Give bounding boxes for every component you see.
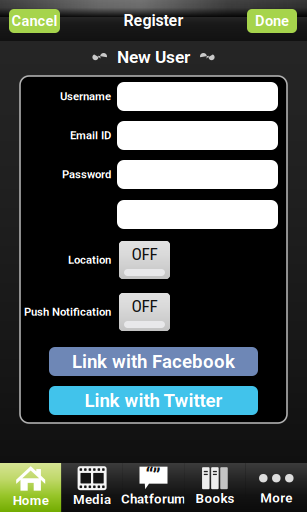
staticText: New User <box>117 47 190 67</box>
button[interactable]: Link with Twitter <box>49 386 258 415</box>
button[interactable]: Off <box>119 293 170 331</box>
button[interactable]: More <box>246 463 307 512</box>
button[interactable]: Home <box>0 463 61 512</box>
button[interactable]: Text field <box>117 121 278 150</box>
staticText: Chatforum <box>121 491 186 507</box>
staticText: More <box>260 490 292 506</box>
staticText: Push Notification <box>24 305 111 319</box>
staticText: OFF <box>131 296 157 316</box>
staticText: Password <box>62 168 111 181</box>
staticText: Register <box>123 11 183 30</box>
button[interactable]: “” <box>123 463 184 512</box>
staticText: Books <box>195 491 234 506</box>
staticText: Cancel <box>11 12 57 30</box>
staticText: OFF <box>131 244 157 264</box>
staticText: Media <box>73 492 111 507</box>
button[interactable]: Link with Facebook <box>49 347 258 376</box>
button[interactable]: Off <box>119 241 170 279</box>
staticText: Link with Facebook <box>72 351 235 372</box>
staticText: Email ID <box>70 129 111 142</box>
button[interactable]: Cancel <box>9 9 60 33</box>
button[interactable]: Media <box>61 463 123 512</box>
staticText: Username <box>60 90 111 103</box>
button[interactable]: Done <box>247 9 297 33</box>
staticText: Done <box>255 12 289 30</box>
staticText: “” <box>145 464 160 487</box>
button[interactable]: Books <box>184 463 246 512</box>
staticText: Home <box>13 493 49 508</box>
button[interactable]: Text field <box>117 200 278 229</box>
button[interactable]: Text field <box>117 160 278 189</box>
staticText: Location <box>68 253 111 267</box>
staticText: Link with Twitter <box>84 390 222 411</box>
button[interactable]: Text field <box>117 82 278 111</box>
